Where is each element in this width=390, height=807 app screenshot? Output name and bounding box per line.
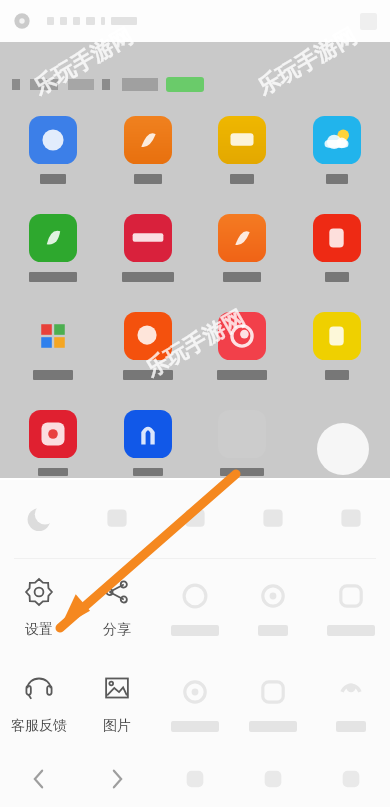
button[interactable]: App <box>295 112 379 184</box>
button[interactable]: Home <box>234 751 312 807</box>
button[interactable]: App <box>106 210 190 282</box>
button[interactable]: App <box>200 308 284 380</box>
button[interactable]: App <box>106 406 190 476</box>
button[interactable]: App <box>11 406 95 476</box>
button[interactable]: Forward <box>78 751 156 807</box>
button[interactable]: App <box>295 210 379 282</box>
button[interactable]: 设置 <box>0 559 78 655</box>
staticText: 图片 <box>103 717 131 735</box>
button[interactable]: Menu item <box>312 559 390 655</box>
button[interactable]: Quick action <box>78 480 156 558</box>
button[interactable]: App <box>200 112 284 184</box>
button[interactable]: App <box>11 112 95 184</box>
button[interactable]: Menu item <box>156 559 234 655</box>
button[interactable]: Menu item <box>234 559 312 655</box>
button[interactable]: Menu <box>312 751 390 807</box>
button[interactable]: App <box>11 308 95 380</box>
staticText: 分享 <box>103 621 131 639</box>
button[interactable]: App <box>106 308 190 380</box>
button[interactable]: Quick action <box>234 480 312 558</box>
button[interactable]: App <box>200 406 284 476</box>
button[interactable]: App <box>295 406 379 468</box>
staticText: 乐玩手游网 <box>28 22 138 102</box>
button[interactable]: Menu item <box>156 655 234 751</box>
button[interactable]: 客服反馈 <box>0 655 78 751</box>
button[interactable]: Browser menu <box>13 12 31 30</box>
button[interactable]: Quick action <box>0 480 78 558</box>
button[interactable]: App <box>200 210 284 282</box>
button[interactable]: App <box>11 210 95 282</box>
staticText: 客服反馈 <box>11 717 67 735</box>
staticText: 乐玩手游网 <box>140 304 250 384</box>
button[interactable]: 分享 <box>78 559 156 655</box>
button[interactable]: App <box>295 308 379 380</box>
button[interactable]: App <box>106 112 190 184</box>
button[interactable]: Windows <box>156 751 234 807</box>
staticText: 乐玩手游网 <box>252 22 362 102</box>
button[interactable]: Quick action <box>156 480 234 558</box>
button[interactable]: 图片 <box>78 655 156 751</box>
staticText: 设置 <box>25 621 53 639</box>
button[interactable]: Assistant <box>317 423 369 475</box>
button[interactable]: Quick action <box>312 480 390 558</box>
button[interactable]: Menu item <box>312 655 390 751</box>
button[interactable]: Menu item <box>234 655 312 751</box>
button[interactable]: Back <box>0 751 78 807</box>
